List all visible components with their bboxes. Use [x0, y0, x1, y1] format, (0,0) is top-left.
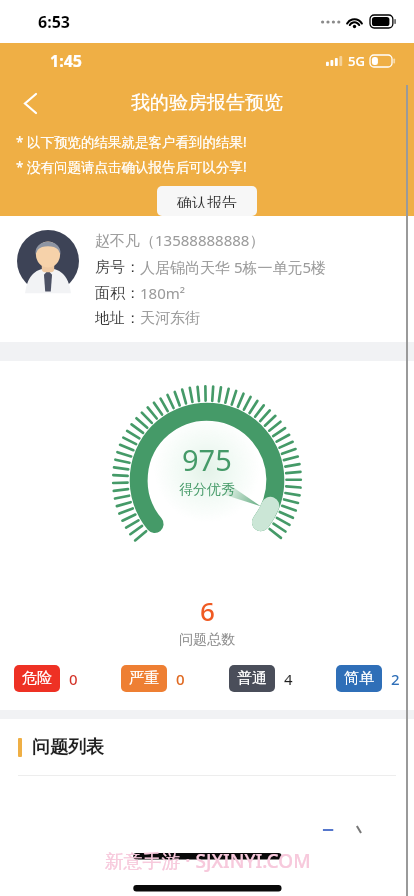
staticText: 0 — [176, 669, 185, 689]
staticText: 房号： — [95, 258, 140, 277]
staticText: * 以下预览的结果就是客户看到的结果! — [16, 133, 247, 151]
staticText: 问题总数 — [179, 631, 235, 649]
button[interactable]: 危险 — [14, 665, 78, 692]
staticText: 面积： — [95, 284, 140, 303]
staticText: 确认报告 — [177, 194, 237, 208]
staticText: 得分优秀 — [179, 481, 235, 499]
staticText: 天河东街 — [140, 309, 200, 328]
button[interactable]: 简单 — [336, 665, 400, 692]
staticText: 问题列表 — [32, 736, 104, 759]
staticText: 简单 — [344, 669, 374, 688]
staticText: 5G — [348, 52, 365, 70]
button[interactable]: 严重 — [121, 665, 185, 692]
button[interactable]: 问题列表 — [0, 719, 414, 775]
button[interactable]: Back — [8, 81, 52, 125]
staticText: 新意手游 · SJXINYI.COM — [104, 848, 311, 874]
staticText: 4 — [284, 669, 293, 689]
staticText: 180m² — [140, 283, 186, 303]
button[interactable]: 确认报告 — [157, 186, 257, 216]
staticText: * 没有问题请点击确认报告后可以分享! — [16, 158, 247, 176]
staticText: 975 — [182, 440, 232, 479]
staticText: 0 — [69, 669, 78, 689]
staticText: 人居锦尚天华 5栋一单元5楼 — [140, 257, 327, 277]
staticText: 危险 — [22, 669, 52, 688]
staticText: 6:53 — [38, 11, 70, 33]
staticText: 普通 — [237, 669, 267, 688]
staticText: 赵不凡（13588888888） — [95, 230, 265, 250]
staticText: 6 — [200, 593, 215, 628]
staticText: 地址： — [95, 309, 140, 328]
staticText: 我的验房报告预览 — [131, 91, 283, 115]
staticText: 1:45 — [50, 50, 82, 72]
button[interactable]: 普通 — [229, 665, 293, 692]
staticText: 严重 — [129, 669, 159, 688]
staticText: 2 — [391, 669, 400, 689]
